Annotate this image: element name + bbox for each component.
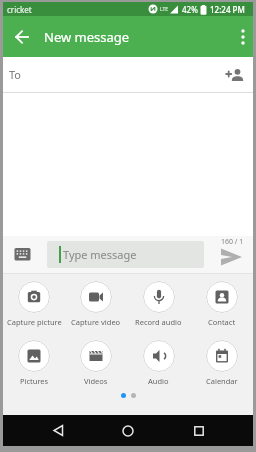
staticText: Pictures [20,376,49,386]
staticText: 12:24 PM [210,4,245,15]
button[interactable]: Type message [47,241,204,268]
button[interactable]: Record audio [127,281,190,327]
button[interactable]: Calendar [190,340,253,386]
button[interactable]: To [3,57,253,92]
staticText: Videos [84,376,108,386]
staticText: 160 / 1 [221,237,244,247]
button[interactable] [3,16,41,57]
staticText: Record audio [135,317,182,327]
staticText: Capture video [71,317,121,327]
staticText: New message [44,28,130,46]
staticText: Audio [148,376,169,386]
button[interactable]: Capture video [65,281,127,327]
staticText: Calendar [206,376,238,386]
staticText: To [9,67,22,82]
staticText: LTE [160,6,169,13]
button[interactable]: Videos [65,340,127,386]
button[interactable]: Contact [190,281,253,327]
staticText: Contact [208,317,236,327]
button[interactable] [233,16,253,57]
staticText: 42% [182,4,198,15]
staticText: Type message [63,247,137,262]
button[interactable] [44,416,72,445]
button[interactable] [218,247,246,267]
button[interactable]: Audio [127,340,190,386]
button[interactable] [114,416,142,445]
button[interactable]: Pictures [3,340,65,386]
staticText: cricket [7,4,32,15]
staticText: Capture picture [7,317,62,327]
button[interactable] [185,416,213,445]
button[interactable]: Capture picture [3,281,65,327]
